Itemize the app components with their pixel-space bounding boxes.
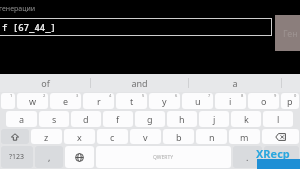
staticText: n [209, 131, 215, 143]
button[interactable]: j [199, 111, 229, 127]
staticText: 0 [294, 93, 297, 98]
button[interactable]: e [50, 93, 81, 109]
staticText: x [77, 131, 82, 143]
staticText: k [244, 113, 249, 125]
staticText: j [213, 113, 216, 125]
button[interactable]: y [149, 93, 180, 109]
button[interactable]: Space [96, 146, 231, 168]
button[interactable]: and [91, 74, 188, 92]
button[interactable]: x [64, 129, 95, 144]
staticText: . [246, 151, 249, 163]
button[interactable] [264, 146, 299, 168]
staticText: a [232, 77, 238, 89]
staticText: e [63, 95, 69, 107]
button[interactable]: , [35, 146, 63, 168]
button[interactable]: w [17, 93, 48, 109]
button[interactable]: f [67_44_] [0, 18, 272, 36]
staticText: ?123 [9, 152, 25, 162]
staticText: b [176, 131, 182, 143]
staticText: c [110, 131, 115, 143]
staticText: l [277, 113, 280, 125]
button[interactable]: c [97, 129, 128, 144]
button[interactable]: o [248, 93, 279, 109]
button[interactable]: d [71, 111, 101, 127]
button[interactable]: Change language [65, 146, 94, 168]
staticText: генерации [0, 4, 36, 14]
staticText: t [130, 95, 134, 107]
staticText: f [116, 113, 120, 125]
staticText: r [97, 95, 101, 107]
staticText: 9 [274, 93, 277, 98]
staticText: of [41, 77, 50, 89]
button[interactable]: ?123 [1, 146, 33, 168]
staticText: 6 [175, 93, 178, 98]
button[interactable]: g [135, 111, 165, 127]
staticText: m [240, 131, 249, 143]
staticText: d [83, 113, 89, 125]
button[interactable]: k [231, 111, 261, 127]
staticText: , [48, 151, 51, 163]
button[interactable]: b [163, 129, 194, 144]
staticText: a [19, 113, 25, 125]
button[interactable]: r [83, 93, 114, 109]
staticText: and [131, 77, 148, 89]
staticText: w [29, 95, 37, 107]
button[interactable]: p [281, 93, 299, 109]
staticText: z [44, 131, 49, 143]
staticText: s [52, 113, 57, 125]
staticText: p [287, 95, 293, 107]
staticText: o [261, 95, 267, 107]
staticText: y [162, 95, 167, 107]
button[interactable]: 1 [1, 93, 15, 109]
button[interactable]: a [6, 111, 37, 127]
staticText: QWERTY [153, 154, 174, 161]
button[interactable]: u [182, 93, 213, 109]
staticText: 7 [208, 93, 211, 98]
staticText: i [229, 95, 232, 107]
staticText: 5 [142, 93, 145, 98]
button[interactable]: Backspace [262, 129, 299, 144]
button[interactable]: v [130, 129, 161, 144]
button[interactable]: . [233, 146, 262, 168]
button[interactable]: Generate [275, 15, 300, 51]
button[interactable]: t [116, 93, 147, 109]
staticText: f [67_44_] [2, 21, 57, 33]
button[interactable]: z [31, 129, 62, 144]
button[interactable]: h [167, 111, 197, 127]
staticText: 1 [10, 93, 13, 98]
button[interactable]: n [196, 129, 227, 144]
button[interactable]: i [215, 93, 246, 109]
button[interactable]: m [229, 129, 260, 144]
button[interactable]: l [263, 111, 293, 127]
staticText: g [147, 113, 153, 125]
staticText: h [179, 113, 185, 125]
staticText: Ген [283, 27, 298, 39]
staticText: 2 [43, 93, 46, 98]
button[interactable]: of [0, 74, 90, 92]
staticText: 3 [76, 93, 79, 98]
button[interactable]: a [189, 74, 281, 92]
staticText: v [143, 131, 148, 143]
staticText: XRecp [256, 146, 290, 161]
button[interactable]: Shift [1, 129, 29, 144]
staticText: 8 [241, 93, 244, 98]
button[interactable]: f [103, 111, 133, 127]
button[interactable]: s [39, 111, 69, 127]
staticText: u [195, 95, 201, 107]
staticText: 4 [109, 93, 112, 98]
